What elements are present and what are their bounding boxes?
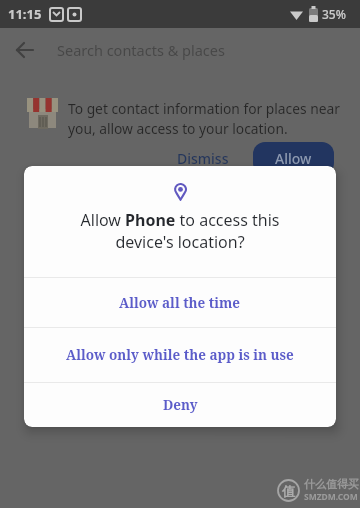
staticText: Allow Phone to access this device's loca… [24, 209, 336, 253]
button[interactable]: Deny [24, 383, 336, 427]
staticText: Allow [275, 149, 312, 168]
button[interactable]: Allow only while the app is in use [24, 328, 336, 382]
button[interactable]: Allow all the time [24, 278, 336, 327]
staticText: SMZDM.COM [304, 491, 358, 503]
button[interactable]: Dismiss [165, 143, 241, 174]
staticText: 什么值得买 [304, 477, 359, 491]
staticText: Dismiss [177, 149, 229, 168]
staticText: Allow only while the app is in use [66, 346, 294, 364]
staticText: Deny [163, 396, 198, 414]
staticText: Search contacts & places [57, 40, 225, 60]
button[interactable]: Search contacts & places [0, 28, 360, 72]
staticText: 35% [322, 6, 346, 22]
button[interactable] [16, 41, 34, 59]
staticText: 11:15 [8, 5, 42, 23]
staticText: To get contact information for places ne… [68, 99, 352, 139]
button[interactable]: Allow [253, 142, 334, 175]
staticText: 值 [282, 483, 295, 499]
staticText: Allow all the time [119, 294, 241, 312]
